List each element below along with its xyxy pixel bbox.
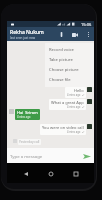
staticText: last seen just now: [10, 36, 36, 40]
staticText: 4 mins ago: [67, 130, 81, 134]
staticText: Rekha Nukum: [10, 29, 44, 36]
staticText: Hai Sriram: [17, 110, 38, 115]
button[interactable]: Take picture: [45, 55, 94, 65]
staticText: You were on video call: [42, 125, 84, 130]
button[interactable]: Recents: [69, 167, 82, 180]
staticText: Take picture: [49, 57, 73, 63]
staticText: 4 mins ago: [67, 93, 81, 97]
button[interactable]: Video call: [70, 30, 79, 39]
staticText: 15:06: [81, 22, 92, 27]
staticText: Choose picture: [49, 67, 79, 73]
staticText: What a great App: [51, 100, 84, 105]
button[interactable]: More options: [85, 31, 92, 38]
staticText: 4 mins ago: [17, 115, 31, 119]
button[interactable]: Home: [44, 167, 57, 180]
staticText: Hello: [74, 88, 84, 93]
staticText: Type a message: [10, 153, 43, 159]
button[interactable]: Back: [19, 167, 32, 180]
button[interactable]: Choose file: [45, 75, 94, 85]
button[interactable]: Send: [81, 150, 93, 162]
button[interactable]: Record voice: [45, 45, 94, 55]
staticText: 4 mins ago: [67, 105, 81, 109]
button[interactable]: Call: [57, 30, 65, 38]
staticText: Record voice: [49, 47, 74, 53]
staticText: Choose file: [49, 77, 71, 83]
button[interactable]: Choose picture: [45, 65, 94, 75]
staticText: Yesterday call: [19, 140, 40, 144]
